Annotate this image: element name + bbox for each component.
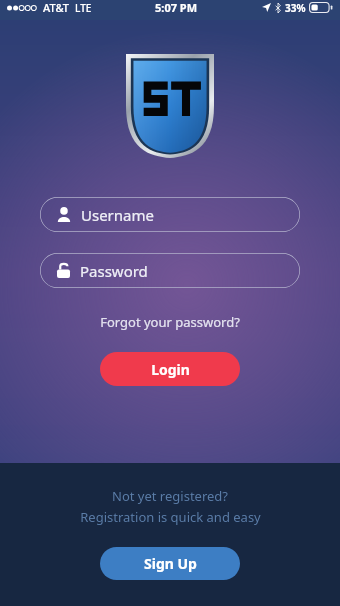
staticText: Login (151, 360, 190, 379)
button[interactable]: Sign Up (100, 547, 240, 580)
staticText: Username (81, 205, 154, 225)
button[interactable]: Username (40, 197, 300, 232)
staticText: Forgot your password? (100, 313, 240, 331)
staticText: Registration is quick and easy (80, 508, 261, 526)
staticText: Password (80, 261, 148, 281)
staticText: AT&T (43, 0, 70, 15)
staticText: 33% (285, 1, 306, 15)
staticText: Not yet registered? (112, 487, 228, 505)
staticText: LTE (75, 1, 92, 15)
button[interactable]: Password (40, 253, 300, 288)
other: ST app logo (126, 54, 214, 158)
button[interactable]: Forgot your password? (0, 313, 340, 331)
staticText: Sign Up (144, 554, 197, 573)
button[interactable]: Login (100, 352, 240, 386)
staticText: 5:07 PM (155, 0, 198, 15)
